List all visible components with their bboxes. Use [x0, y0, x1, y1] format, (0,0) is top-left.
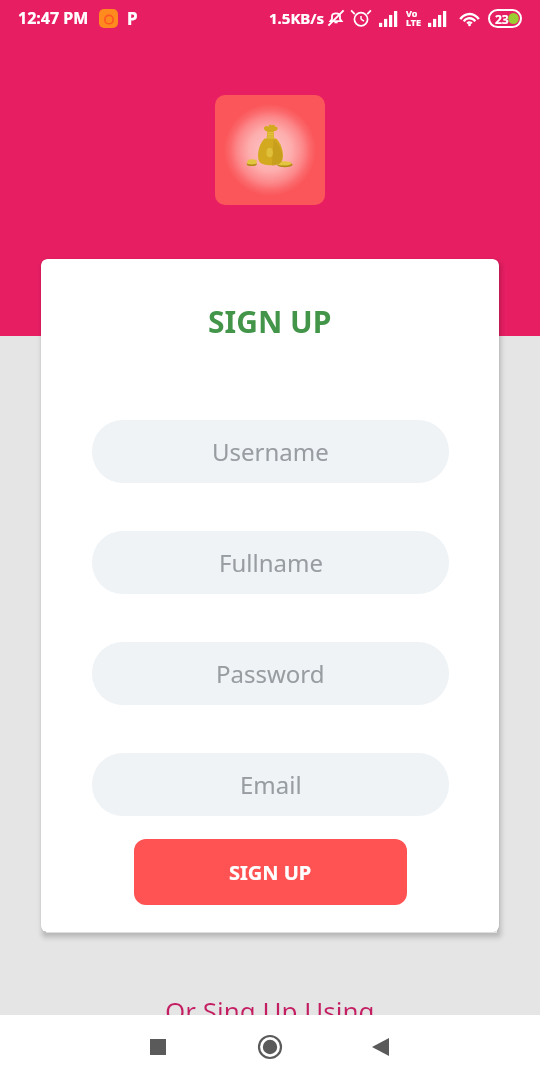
staticText: SIGN UP	[229, 859, 312, 886]
button[interactable]: Password	[92, 642, 449, 705]
staticText: Username	[212, 435, 329, 468]
staticText: 23	[495, 11, 509, 27]
staticText: 12:47 PM	[18, 7, 89, 29]
button[interactable]: SIGN UP	[134, 839, 407, 905]
button[interactable]: Fullname	[92, 531, 449, 594]
staticText: Or Sing Up Using	[165, 993, 375, 1028]
staticText: P	[127, 7, 138, 30]
staticText: 1.5KB/s	[269, 8, 325, 28]
button[interactable]: App logo: money bag	[215, 95, 325, 205]
button[interactable]: Home	[240, 1017, 300, 1077]
staticText: SIGN UP	[208, 301, 332, 342]
button[interactable]: Recent apps	[128, 1017, 188, 1077]
button[interactable]: Email	[92, 753, 449, 816]
staticText: Email	[240, 768, 302, 801]
button[interactable]: Username	[92, 420, 449, 483]
staticText: Password	[216, 657, 325, 690]
staticText: Fullname	[219, 546, 323, 579]
button[interactable]: Back	[350, 1017, 410, 1077]
staticText: Vo LTE	[406, 7, 422, 29]
